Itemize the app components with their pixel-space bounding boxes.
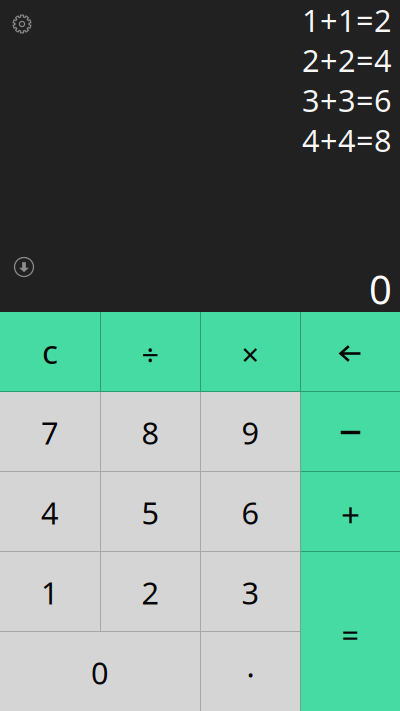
button[interactable]: 3 — [201, 552, 300, 631]
staticText: × — [241, 334, 259, 374]
staticText: 1 — [41, 572, 59, 613]
button[interactable]: 6 — [201, 472, 300, 551]
staticText: 9 — [241, 412, 259, 453]
staticText: 3+3=6 — [302, 80, 392, 120]
button[interactable]: 8 — [101, 392, 200, 471]
button[interactable]: 1 — [0, 552, 100, 631]
button[interactable]: 0 — [0, 632, 200, 711]
button[interactable]: 5 — [101, 472, 200, 551]
staticText: . — [246, 645, 254, 686]
button[interactable]: Clear — [0, 312, 100, 391]
button[interactable]: Settings — [6, 8, 38, 40]
button[interactable]: Backspace — [301, 312, 400, 391]
button[interactable]: Multiply — [201, 312, 300, 391]
button[interactable]: Divide — [101, 312, 200, 391]
staticText: 0 — [369, 262, 392, 315]
button[interactable]: Plus — [301, 472, 400, 551]
staticText: 3 — [241, 572, 259, 613]
button[interactable]: 7 — [0, 392, 100, 471]
button[interactable]: 4 — [0, 472, 100, 551]
staticText: 2+2=4 — [302, 40, 392, 80]
staticText: 2 — [141, 572, 159, 613]
staticText: 8 — [141, 412, 159, 453]
staticText: 4+4=8 — [302, 120, 392, 160]
staticText: 4 — [41, 492, 59, 533]
button[interactable]: Collapse history — [9, 252, 39, 282]
staticText: = — [341, 614, 359, 655]
staticText: 1+1=2 — [302, 0, 392, 40]
staticText: ÷ — [141, 334, 159, 375]
button[interactable]: 2 — [101, 552, 200, 631]
button[interactable]: . — [201, 632, 300, 711]
staticText: 6 — [241, 492, 259, 533]
staticText: 5 — [141, 492, 159, 533]
staticText: + — [341, 492, 360, 536]
staticText: 7 — [41, 412, 59, 453]
button[interactable]: Equals — [301, 552, 400, 711]
button[interactable]: 9 — [201, 392, 300, 471]
staticText: c — [42, 329, 58, 373]
staticText: 0 — [91, 652, 109, 693]
button[interactable]: Minus — [301, 392, 400, 471]
